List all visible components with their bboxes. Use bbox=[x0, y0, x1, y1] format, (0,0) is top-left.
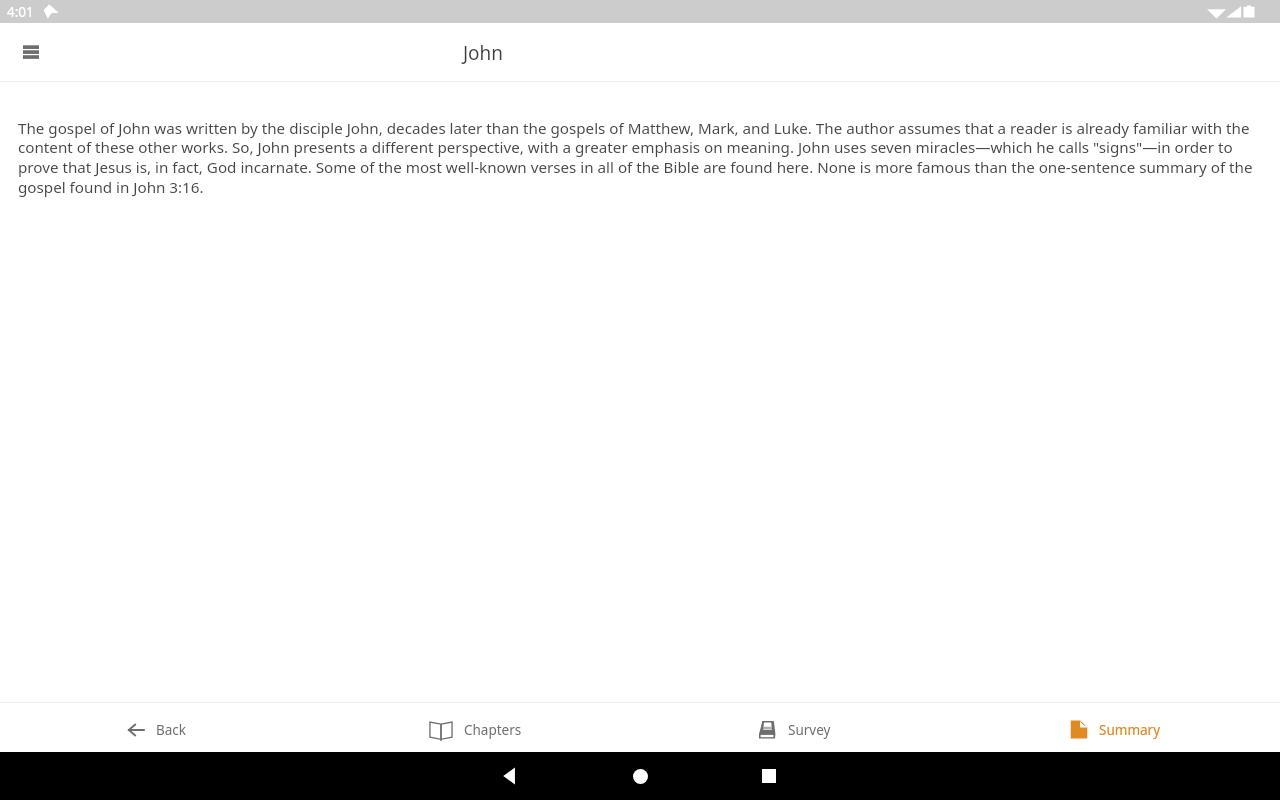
staticText: Back bbox=[156, 721, 187, 739]
staticText: 4:01 bbox=[7, 3, 34, 21]
button[interactable]: Chapters bbox=[320, 703, 640, 752]
staticText: John bbox=[66, 40, 900, 66]
staticText: Chapters bbox=[464, 721, 522, 739]
staticText: Summary bbox=[1099, 721, 1161, 739]
staticText: The gospel of John was written by the di… bbox=[18, 118, 1254, 198]
button[interactable]: Survey bbox=[640, 703, 960, 752]
button[interactable]: Recent apps bbox=[745, 752, 793, 800]
button[interactable]: Open navigation menu bbox=[10, 31, 52, 73]
button[interactable]: Summary bbox=[960, 703, 1280, 752]
staticText: Survey bbox=[788, 721, 831, 739]
button[interactable]: Back bbox=[0, 703, 320, 752]
button[interactable]: Back bbox=[487, 752, 535, 800]
button[interactable]: Home bbox=[616, 752, 664, 800]
